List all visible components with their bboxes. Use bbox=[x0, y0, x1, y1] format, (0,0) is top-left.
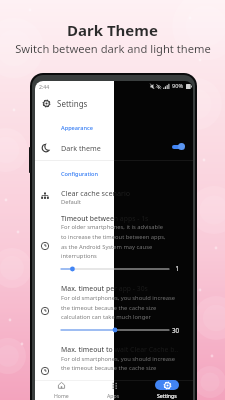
staticText: 2:44 bbox=[39, 83, 50, 90]
staticText: Apps bbox=[107, 392, 120, 399]
button[interactable]: Settings bbox=[140, 380, 193, 400]
staticText: 1 bbox=[139, 264, 179, 272]
staticText: Max. timeout to wait Clear Cache b.. bbox=[61, 345, 179, 354]
button[interactable]: Apps bbox=[87, 380, 140, 400]
staticText: Clear cache scenario bbox=[61, 188, 131, 198]
staticText: Configuration bbox=[61, 170, 98, 178]
staticText: to increase the timeout between apps, bbox=[61, 233, 166, 241]
staticText: Settings bbox=[157, 392, 177, 399]
staticText: Settings bbox=[57, 98, 88, 109]
staticText: Max. timeout per app - 30s bbox=[61, 284, 148, 293]
staticText: 90% bbox=[172, 82, 184, 90]
staticText: the timeout because the cache size bbox=[61, 304, 157, 312]
staticText: Appearance bbox=[61, 124, 93, 132]
staticText: For old smartphones, you should increase bbox=[61, 355, 176, 363]
staticText: interruptions bbox=[61, 252, 97, 260]
staticText: Timeout between apps - 1s bbox=[61, 214, 149, 223]
staticText: 30 bbox=[139, 326, 179, 334]
staticText: Dark theme bbox=[61, 143, 101, 153]
button[interactable]: Home bbox=[35, 380, 87, 400]
staticText: For old smartphones, you should increase bbox=[61, 294, 176, 302]
button[interactable] bbox=[35, 139, 193, 157]
staticText: as the Android System may cause bbox=[61, 243, 153, 251]
staticText: Dark Theme bbox=[67, 20, 158, 40]
staticText: Default bbox=[61, 198, 81, 206]
staticText: For older smartphones, it is advisable bbox=[61, 223, 163, 231]
staticText: calculation can take much longer bbox=[61, 313, 151, 321]
staticText: Switch between dark and light theme bbox=[15, 41, 211, 56]
staticText: Home bbox=[54, 392, 69, 399]
staticText: the timeout because the cache size bbox=[61, 364, 157, 372]
